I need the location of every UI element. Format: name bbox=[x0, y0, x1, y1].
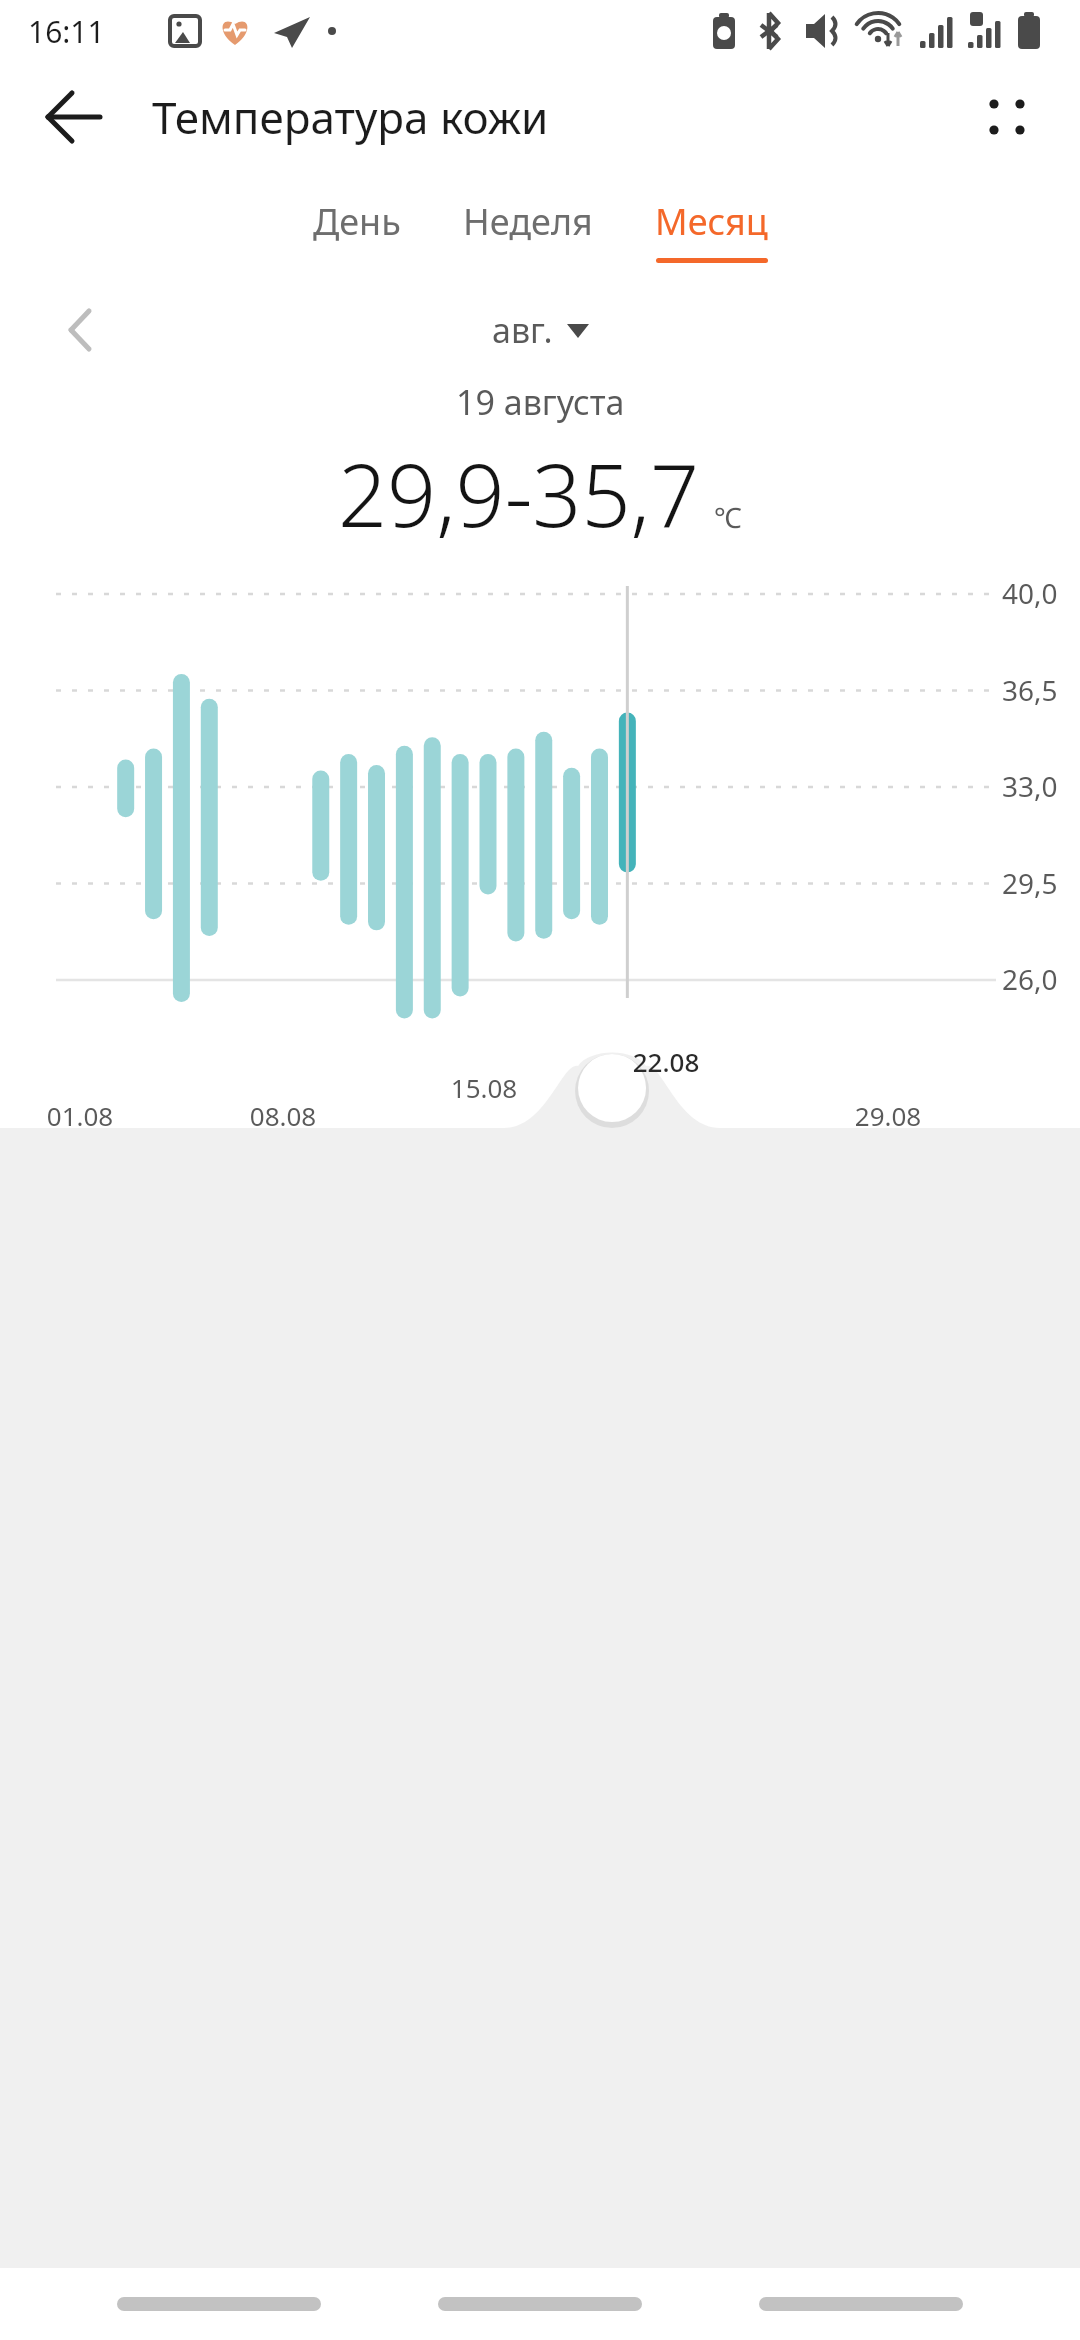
staticText: 01.08 bbox=[36, 1098, 124, 1133]
button[interactable]: Навигация bbox=[438, 2297, 642, 2311]
staticText: ℃ bbox=[714, 498, 742, 536]
staticText: День bbox=[313, 197, 401, 246]
button[interactable]: День bbox=[299, 189, 415, 271]
staticText: 26,0 bbox=[1002, 960, 1058, 998]
staticText: Температура кожи bbox=[152, 87, 549, 147]
staticText: 36,5 bbox=[1002, 671, 1058, 709]
button[interactable]: Неделя bbox=[449, 189, 607, 271]
button[interactable]: Навигация bbox=[759, 2297, 963, 2311]
staticText: авг. bbox=[492, 307, 553, 353]
button[interactable]: Навигация bbox=[117, 2297, 321, 2311]
button[interactable]: Месяц bbox=[641, 189, 782, 271]
button[interactable]: Ещё bbox=[972, 82, 1042, 152]
staticText: 22.08 bbox=[622, 1044, 710, 1079]
staticText: 16:11 bbox=[28, 11, 105, 52]
staticText: 33,0 bbox=[1002, 767, 1058, 805]
button[interactable]: Назад bbox=[40, 82, 110, 152]
staticText: 29,5 bbox=[1002, 864, 1058, 902]
button[interactable]: авг. bbox=[476, 301, 605, 359]
staticText: 19 августа bbox=[456, 379, 625, 425]
staticText: 40,0 bbox=[1002, 574, 1058, 612]
staticText: 08.08 bbox=[239, 1098, 327, 1133]
button[interactable]: Предыдущий месяц bbox=[48, 302, 104, 358]
staticText: Неделя bbox=[463, 197, 593, 246]
staticText: 29,9-35,7 bbox=[338, 435, 700, 552]
staticText: Месяц bbox=[655, 197, 768, 246]
staticText: 15.08 bbox=[440, 1070, 528, 1105]
staticText: 29.08 bbox=[844, 1098, 932, 1133]
